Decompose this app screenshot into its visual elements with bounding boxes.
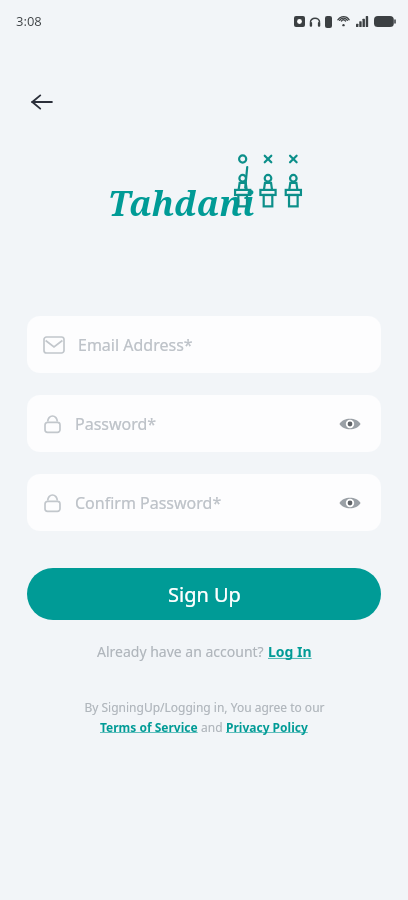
staticText: By SigningUp/Logging in, You agree to ou… [84,699,325,715]
button[interactable]: Sign Up [27,568,381,620]
button[interactable]: Password* [27,395,381,452]
staticText: Password* [75,413,336,435]
button[interactable]: Already have an account? [0,642,408,661]
button[interactable]: Email Address* [27,316,381,373]
button[interactable]: Confirm Password* [27,474,381,531]
staticText: Tahdani [108,180,255,226]
staticText: Email Address* [78,334,364,356]
button[interactable]: Privacy Policy [226,719,308,735]
button[interactable]: Show password [336,410,364,438]
staticText: Log In [268,642,312,661]
staticText: and [198,719,226,735]
button[interactable]: Back [20,80,64,124]
staticText: 3:08 [16,12,42,30]
staticText: Confirm Password* [75,492,336,514]
button[interactable]: Terms of Service [100,719,198,735]
staticText: Already have an account? [97,642,268,661]
staticText: Sign Up [168,581,241,608]
button[interactable]: Show password [336,489,364,517]
